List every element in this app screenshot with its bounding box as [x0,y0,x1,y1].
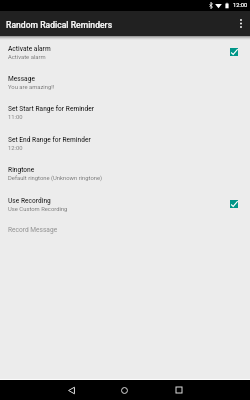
staticText: You are amazing!! [8,84,55,91]
button[interactable]: Recent apps [162,380,195,400]
staticText: Use Recording [8,197,51,205]
button[interactable]: Record Message [0,226,250,237]
button[interactable]: More options [232,11,250,36]
button[interactable]: Activate alarm [0,45,250,66]
button[interactable]: Toggle Use Recording [226,196,242,212]
button[interactable]: Use Recording [0,197,250,218]
staticText: Default ringtone (Unknown ringtone) [8,175,103,182]
staticText: 11:00 [8,114,23,121]
staticText: 12:00 [233,2,248,9]
staticText: Ringtone [8,166,35,174]
staticText: Set End Range for Reminder [8,136,91,144]
button[interactable]: Back [55,380,88,400]
button[interactable]: Ringtone [0,166,250,187]
staticText: Activate alarm [8,54,46,61]
staticText: Set Start Range for Reminder [8,105,95,113]
staticText: 12:00 [8,145,23,152]
staticText: Use Custom Recording [8,206,68,213]
staticText: Message [8,75,35,83]
button[interactable]: Message [0,75,250,96]
staticText: Random Radical Reminders [6,20,113,30]
staticText: Activate alarm [8,45,51,53]
button[interactable]: Set Start Range for Reminder [0,105,250,126]
staticText: Record Message [8,226,58,234]
button[interactable]: Toggle Activate alarm [226,44,242,60]
button[interactable]: Set End Range for Reminder [0,136,250,157]
button[interactable]: Home [108,380,141,400]
